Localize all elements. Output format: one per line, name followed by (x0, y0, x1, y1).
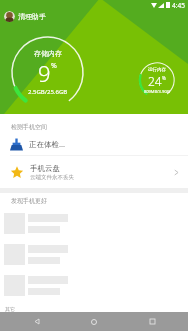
staticText: 2.5GB/25.6GB (28, 88, 68, 96)
staticText: 其它 (5, 306, 15, 312)
button[interactable]: Account (4, 11, 15, 22)
staticText: 9 (38, 58, 51, 88)
staticText: 24 (148, 73, 162, 89)
button[interactable]: Recent apps (143, 312, 161, 331)
staticText: 运行内存 (148, 67, 166, 73)
staticText: 清理助手 (18, 12, 46, 21)
button[interactable]: Home (85, 312, 103, 331)
staticText: 存储内存 (34, 49, 62, 58)
button[interactable]: 手机云盘 (0, 158, 188, 186)
button[interactable]: 正在体检... (0, 134, 188, 154)
staticText: 手机云盘 (30, 164, 60, 173)
staticText: 4:45 (172, 1, 185, 10)
staticText: % (51, 61, 57, 71)
staticText: 云端文件永不丢失 (30, 174, 74, 181)
staticText: 正在体检... (29, 139, 66, 149)
staticText: % (162, 75, 166, 81)
staticText: 检测手机空间 (11, 123, 47, 131)
staticText: 809MB/3.9GB (144, 89, 170, 94)
button[interactable]: Back (28, 312, 46, 331)
staticText: 发现手机更好 (11, 197, 47, 205)
